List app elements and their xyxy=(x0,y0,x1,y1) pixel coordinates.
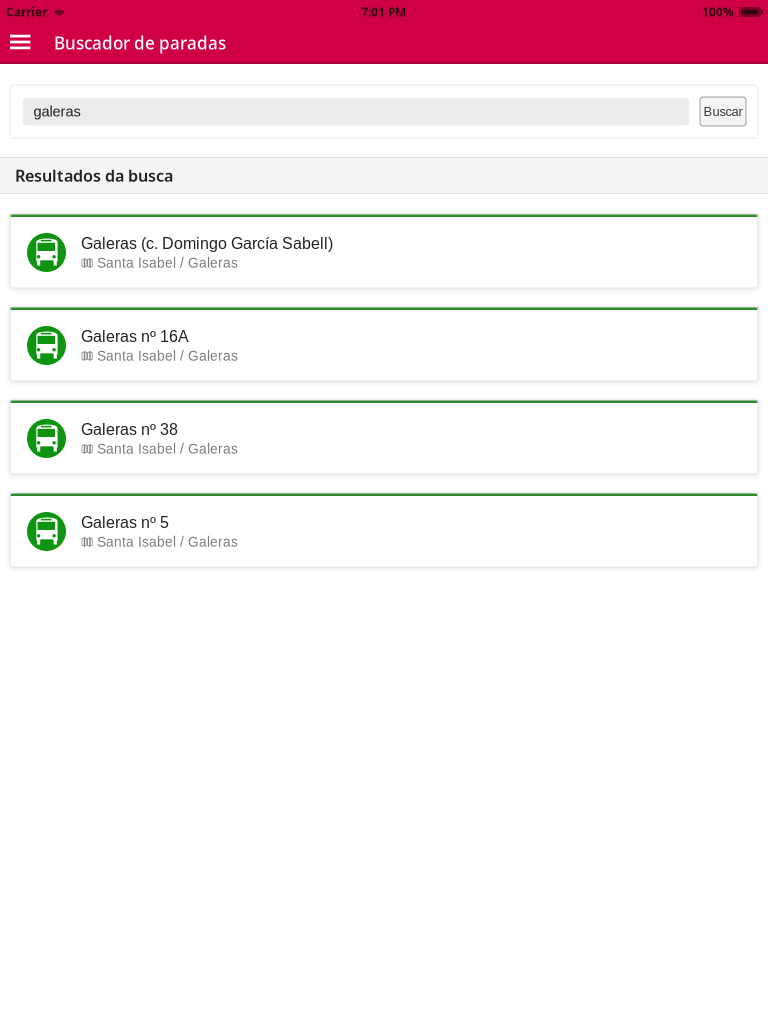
button[interactable]: Menu xyxy=(0,24,40,62)
staticText: Carrier xyxy=(6,4,47,20)
button[interactable]: Galeras nº 5 xyxy=(10,493,758,567)
staticText: Santa Isabel / Galeras xyxy=(97,441,238,457)
staticText: Santa Isabel / Galeras xyxy=(97,255,238,271)
staticText: Buscar xyxy=(703,104,742,119)
staticText: Resultados da busca xyxy=(15,164,173,186)
staticText: Galeras nº 38 xyxy=(81,420,178,438)
staticText: Buscador de paradas xyxy=(54,31,226,55)
staticText: 100% xyxy=(702,4,734,20)
button[interactable]: Buscar xyxy=(700,97,746,126)
staticText: Santa Isabel / Galeras xyxy=(97,534,238,550)
staticText: Galeras (c. Domingo García Sabell) xyxy=(81,234,333,252)
button[interactable]: Galeras nº 38 xyxy=(10,400,758,474)
staticText: 7:01 PM xyxy=(361,4,406,20)
staticText: Galeras nº 5 xyxy=(81,513,169,531)
staticText: galeras xyxy=(34,103,81,120)
staticText: Galeras nº 16A xyxy=(81,327,189,345)
button[interactable]: Buscador de paradas xyxy=(54,24,226,62)
button[interactable]: Galeras nº 16A xyxy=(10,307,758,381)
staticText: Santa Isabel / Galeras xyxy=(97,348,238,364)
button[interactable]: Galeras (c. Domingo García Sabell) xyxy=(10,214,758,288)
